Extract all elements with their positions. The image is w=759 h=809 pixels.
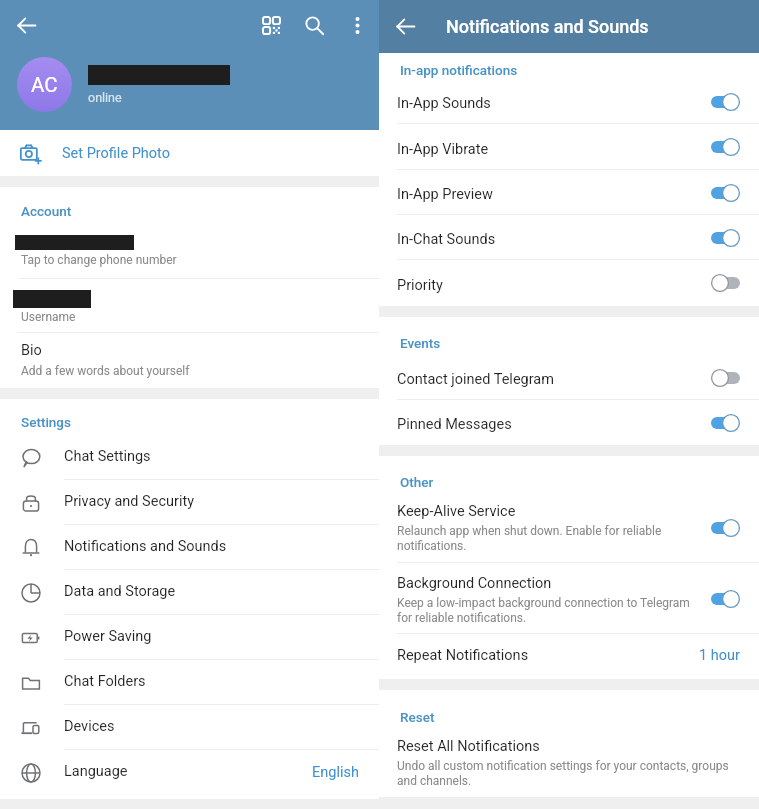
button[interactable]: Search [293,0,336,50]
button[interactable]: Contact joined Telegram [379,355,759,400]
staticText: In-App Preview [397,186,493,203]
staticText: Notifications and Sounds [446,16,649,37]
button[interactable]: Bio [0,333,379,388]
staticText: Reset [400,709,435,725]
button[interactable]: In-App Sounds [379,79,759,124]
button[interactable]: Back [379,0,432,53]
staticText: Other [400,474,434,490]
staticText: In-app notifications [400,62,518,78]
staticText: Contact joined Telegram [397,371,554,388]
staticText: Reset All Notifications [397,738,540,755]
button[interactable]: Chat Folders [0,660,379,705]
staticText: online [88,90,122,105]
button[interactable]: Devices [0,705,379,750]
button[interactable]: Notifications and Sounds [0,525,379,570]
button[interactable]: In-App Vibrate [379,124,759,170]
staticText: Username [21,310,76,324]
staticText: 1 hour [699,647,740,664]
button[interactable]: Set Profile Photo [0,130,379,176]
staticText: Priority [397,277,443,294]
button[interactable]: Power Saving [0,615,379,660]
button[interactable]: More options [336,0,379,50]
staticText: Repeat Notifications [397,647,529,664]
button[interactable]: Back [0,0,52,50]
staticText: Settings [21,414,71,430]
staticText: Chat Folders [64,673,146,690]
staticText: English [312,764,359,781]
staticText: Keep-Alive Service [397,503,516,520]
button[interactable]: Privacy and Security [0,480,379,525]
staticText: Privacy and Security [64,493,195,510]
staticText: In-App Sounds [397,95,491,112]
button[interactable]: Reset All Notifications [379,728,759,797]
button[interactable]: Background Connection [379,563,759,634]
button[interactable]: Username [0,279,379,332]
staticText: AC [31,73,58,97]
staticText: Relaunch app when shut down. Enable for … [397,524,662,553]
button[interactable]: Language [0,750,379,795]
staticText: Add a few words about yourself [21,364,190,378]
button[interactable]: In-Chat Sounds [379,215,759,260]
staticText: Power Saving [64,628,152,645]
staticText: Notifications and Sounds [64,538,227,555]
staticText: Background Connection [397,575,552,592]
button[interactable]: Repeat Notifications [379,634,759,679]
button[interactable]: Data and Storage [0,570,379,615]
staticText: Keep a low-impact background connection … [397,596,690,625]
button[interactable]: In-App Preview [379,170,759,215]
button[interactable]: Keep-Alive Service [379,492,759,563]
staticText: In-App Vibrate [397,141,489,158]
staticText: Language [64,763,128,780]
staticText: Events [400,335,441,351]
staticText: Chat Settings [64,448,151,465]
button[interactable]: Profile photo [17,57,72,112]
button[interactable]: Scan QR code [250,0,293,50]
staticText: Undo all custom notification settings fo… [397,759,729,788]
staticText: Tap to change phone number [21,253,177,267]
button[interactable]: Priority [379,260,759,306]
staticText: In-Chat Sounds [397,231,496,248]
staticText: Bio [21,342,42,359]
staticText: Data and Storage [64,583,176,600]
button[interactable]: Tap to change phone number [0,225,379,278]
staticText: Devices [64,718,115,735]
button[interactable]: Chat Settings [0,435,379,480]
staticText: Pinned Messages [397,416,512,433]
button[interactable]: Pinned Messages [379,400,759,445]
staticText: Account [21,203,72,219]
staticText: Set Profile Photo [62,145,170,162]
